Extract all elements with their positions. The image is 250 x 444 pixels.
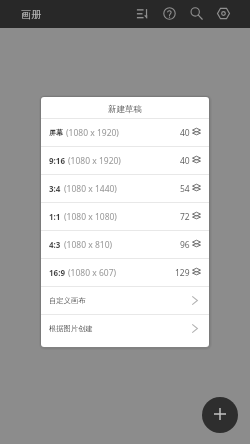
staticText: 4:3 — [49, 239, 61, 250]
button[interactable]: New — [202, 397, 238, 433]
staticText: 40 — [180, 127, 190, 139]
staticText: 16:9 — [49, 267, 65, 278]
staticText: 3:4 — [49, 183, 61, 194]
staticText: 画册 — [21, 8, 41, 21]
button[interactable]: Help — [156, 0, 183, 28]
staticText: 40 — [180, 155, 190, 167]
staticText: 96 — [180, 239, 190, 251]
button[interactable]: Sort — [129, 0, 156, 28]
staticText: (1080 x 1920) — [66, 127, 119, 139]
staticText: (1080 x 1080) — [64, 211, 117, 223]
button[interactable]: 1:1 — [41, 203, 209, 230]
button[interactable]: 16:9 — [41, 259, 209, 286]
button[interactable]: 根据图片创建 — [41, 315, 209, 342]
staticText: 9:16 — [49, 155, 65, 166]
button[interactable]: 屏幕 — [41, 119, 209, 146]
button[interactable]: 4:3 — [41, 231, 209, 258]
staticText: (1080 x 1920) — [68, 155, 121, 167]
staticText: 54 — [180, 183, 190, 195]
staticText: 1:1 — [49, 211, 61, 222]
staticText: 新建草稿 — [108, 104, 142, 115]
button[interactable]: 9:16 — [41, 147, 209, 174]
button[interactable]: Search — [183, 0, 210, 28]
staticText: 自定义画布 — [49, 296, 86, 305]
button[interactable]: 自定义画布 — [41, 287, 209, 314]
staticText: 129 — [175, 267, 190, 279]
staticText: 72 — [180, 211, 190, 223]
button[interactable]: 3:4 — [41, 175, 209, 202]
staticText: (1080 x 810) — [64, 239, 113, 251]
button[interactable]: Settings — [210, 0, 237, 28]
staticText: (1080 x 1440) — [64, 183, 117, 195]
staticText: 根据图片创建 — [49, 324, 93, 333]
staticText: 屏幕 — [49, 128, 63, 137]
staticText: (1080 x 607) — [68, 267, 117, 279]
